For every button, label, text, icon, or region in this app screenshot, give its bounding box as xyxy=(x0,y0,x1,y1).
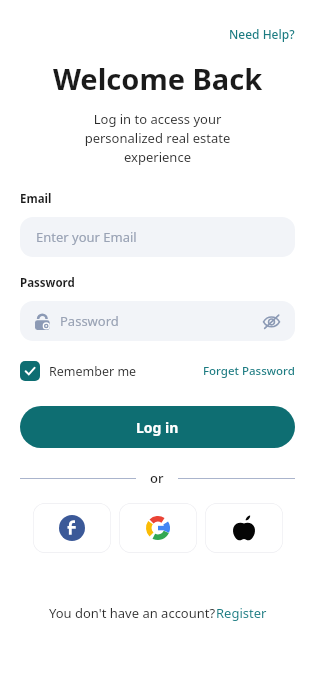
button[interactable]: Forget Password xyxy=(203,360,295,382)
staticText: You don't have an account? xyxy=(49,604,216,622)
staticText: Password xyxy=(20,275,75,291)
button[interactable]: Need Help? xyxy=(227,24,297,44)
button[interactable]: Register xyxy=(216,604,267,622)
button[interactable]: Sign in with Apple xyxy=(205,503,283,553)
button[interactable]: Log in xyxy=(20,406,295,448)
button[interactable]: Password xyxy=(20,301,295,341)
staticText: Need Help? xyxy=(229,26,295,42)
staticText: Enter your Email xyxy=(36,228,137,246)
button[interactable]: Enter your Email xyxy=(20,217,295,257)
staticText: Log in to access your personalized real … xyxy=(36,110,279,166)
button[interactable]: Sign in with Google xyxy=(119,503,197,553)
button[interactable]: Remember me xyxy=(20,358,137,384)
staticText: or xyxy=(150,469,164,487)
staticText: Remember me xyxy=(49,363,137,380)
button[interactable]: Sign in with Facebook xyxy=(33,503,111,553)
staticText: Password xyxy=(60,312,119,330)
staticText: Log in xyxy=(136,418,179,437)
staticText: Welcome Back xyxy=(0,59,315,98)
staticText: Email xyxy=(20,191,52,207)
staticText: Forget Password xyxy=(203,363,295,379)
button[interactable]: Show password xyxy=(257,307,285,335)
staticText: Register xyxy=(216,604,267,622)
